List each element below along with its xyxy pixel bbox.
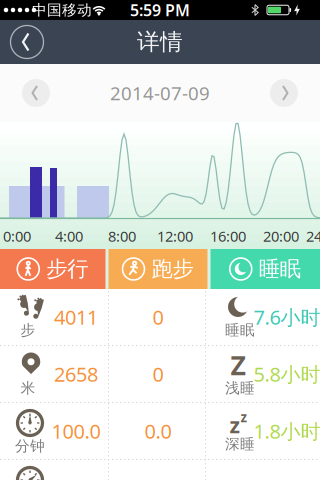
staticText: 0.0 [144, 418, 171, 444]
staticText: 步行 [46, 256, 88, 282]
staticText: 5:59 PM [130, 0, 190, 21]
staticText: 跑步 [151, 256, 193, 282]
staticText: 睡眠 [225, 321, 255, 339]
staticText: 8:00 [108, 226, 136, 246]
button[interactable]: 步行 [0, 249, 105, 289]
staticText: 1.8小时 [253, 418, 320, 444]
button[interactable]: 睡眠 [210, 249, 320, 289]
staticText: Z [230, 347, 245, 383]
staticText: 20:00 [263, 226, 299, 246]
staticText: 0:00 [3, 226, 31, 246]
staticText: 0 [152, 304, 163, 330]
staticText: 2014-07-09 [110, 81, 210, 105]
button[interactable]: Back [10, 25, 43, 58]
staticText: 睡眠 [259, 256, 301, 282]
staticText: 浅睡 [225, 379, 255, 397]
button[interactable]: Previous day [22, 79, 50, 107]
staticText: 4:00 [55, 226, 83, 246]
button[interactable]: 跑步 [108, 249, 207, 289]
staticText: 12:00 [157, 226, 193, 246]
button[interactable]: Next day [270, 79, 298, 107]
staticText: 24 [306, 226, 320, 246]
staticText: 米 [20, 379, 35, 397]
staticText: 深睡 [225, 435, 255, 453]
staticText: 4011 [54, 304, 98, 330]
staticText: z [229, 411, 240, 439]
staticText: z [240, 408, 247, 426]
staticText: 分钟 [15, 437, 45, 455]
staticText: 0 [152, 361, 163, 387]
staticText: 16:00 [210, 226, 246, 246]
staticText: 5.8小时 [253, 361, 320, 387]
staticText: 100.0 [51, 418, 100, 444]
staticText: 2658 [54, 361, 98, 387]
staticText: 中国移动 [32, 1, 92, 19]
staticText: 步 [20, 321, 35, 339]
staticText: 详情 [137, 28, 183, 56]
staticText: 7.6小时 [253, 304, 320, 330]
